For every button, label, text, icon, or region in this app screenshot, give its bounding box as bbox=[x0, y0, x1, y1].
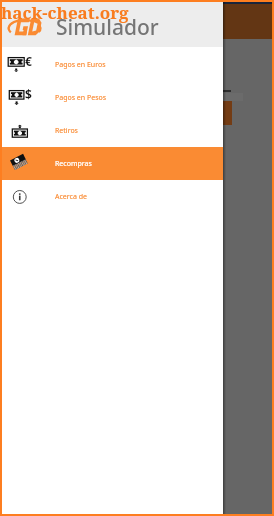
button[interactable]: Acerca de bbox=[2, 180, 223, 213]
staticText: Recompras bbox=[55, 159, 92, 169]
button[interactable]: Recompras bbox=[2, 147, 223, 180]
staticText: Retiros bbox=[55, 126, 78, 136]
staticText: hack-cheat.org bbox=[1, 1, 129, 24]
button[interactable]: Retiros bbox=[2, 114, 223, 147]
staticText: Acerca de bbox=[55, 192, 87, 202]
staticText: € bbox=[25, 53, 32, 69]
button[interactable]: € bbox=[2, 48, 223, 81]
staticText: $ bbox=[25, 86, 32, 102]
staticText: Simulador bbox=[56, 13, 159, 42]
button[interactable]: $ bbox=[2, 81, 223, 114]
staticText: Pagos en Pesos bbox=[55, 93, 107, 103]
staticText: Pagos en Euros bbox=[55, 60, 106, 70]
